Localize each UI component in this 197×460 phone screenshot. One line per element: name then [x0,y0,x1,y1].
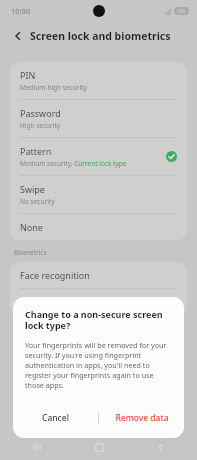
button[interactable]: Back [149,436,171,458]
button[interactable]: Back [8,26,28,46]
button[interactable]: Swipe [10,176,187,213]
staticText: Face recognition [20,269,90,281]
staticText: Screen lock and biometrics [30,29,171,43]
button[interactable]: None [10,214,187,240]
staticText: Medium-high security [20,83,87,92]
staticText: No security [20,197,55,206]
button[interactable]: Remove data [99,404,184,432]
staticText: Medium security, Current lock type [20,159,127,168]
staticText: 10:00 [11,6,31,16]
staticText: Password [20,107,61,119]
staticText: None [20,221,43,233]
staticText: Swipe [20,183,45,195]
staticText: Change to a non-secure screen lock type? [25,308,172,332]
staticText: Cancel [42,412,69,424]
button[interactable]: Recent apps [26,436,48,458]
button[interactable]: Home [88,436,110,458]
staticText: High security [20,121,61,130]
button[interactable]: Cancel [13,404,98,432]
button[interactable]: Pattern [10,138,187,175]
staticText: Your fingerprints will be removed for yo… [25,340,172,390]
staticText: Biometrics [14,248,47,257]
staticText: Pattern [20,145,52,157]
staticText: PIN [20,69,36,81]
staticText: Remove data [115,412,169,424]
button[interactable]: PIN [10,62,187,99]
button[interactable]: Face recognition [10,262,187,288]
button[interactable]: Password [10,100,187,137]
staticText: Fingerprints [20,296,72,308]
staticText: 100 [177,8,186,15]
button[interactable]: Fingerprints [10,289,187,315]
